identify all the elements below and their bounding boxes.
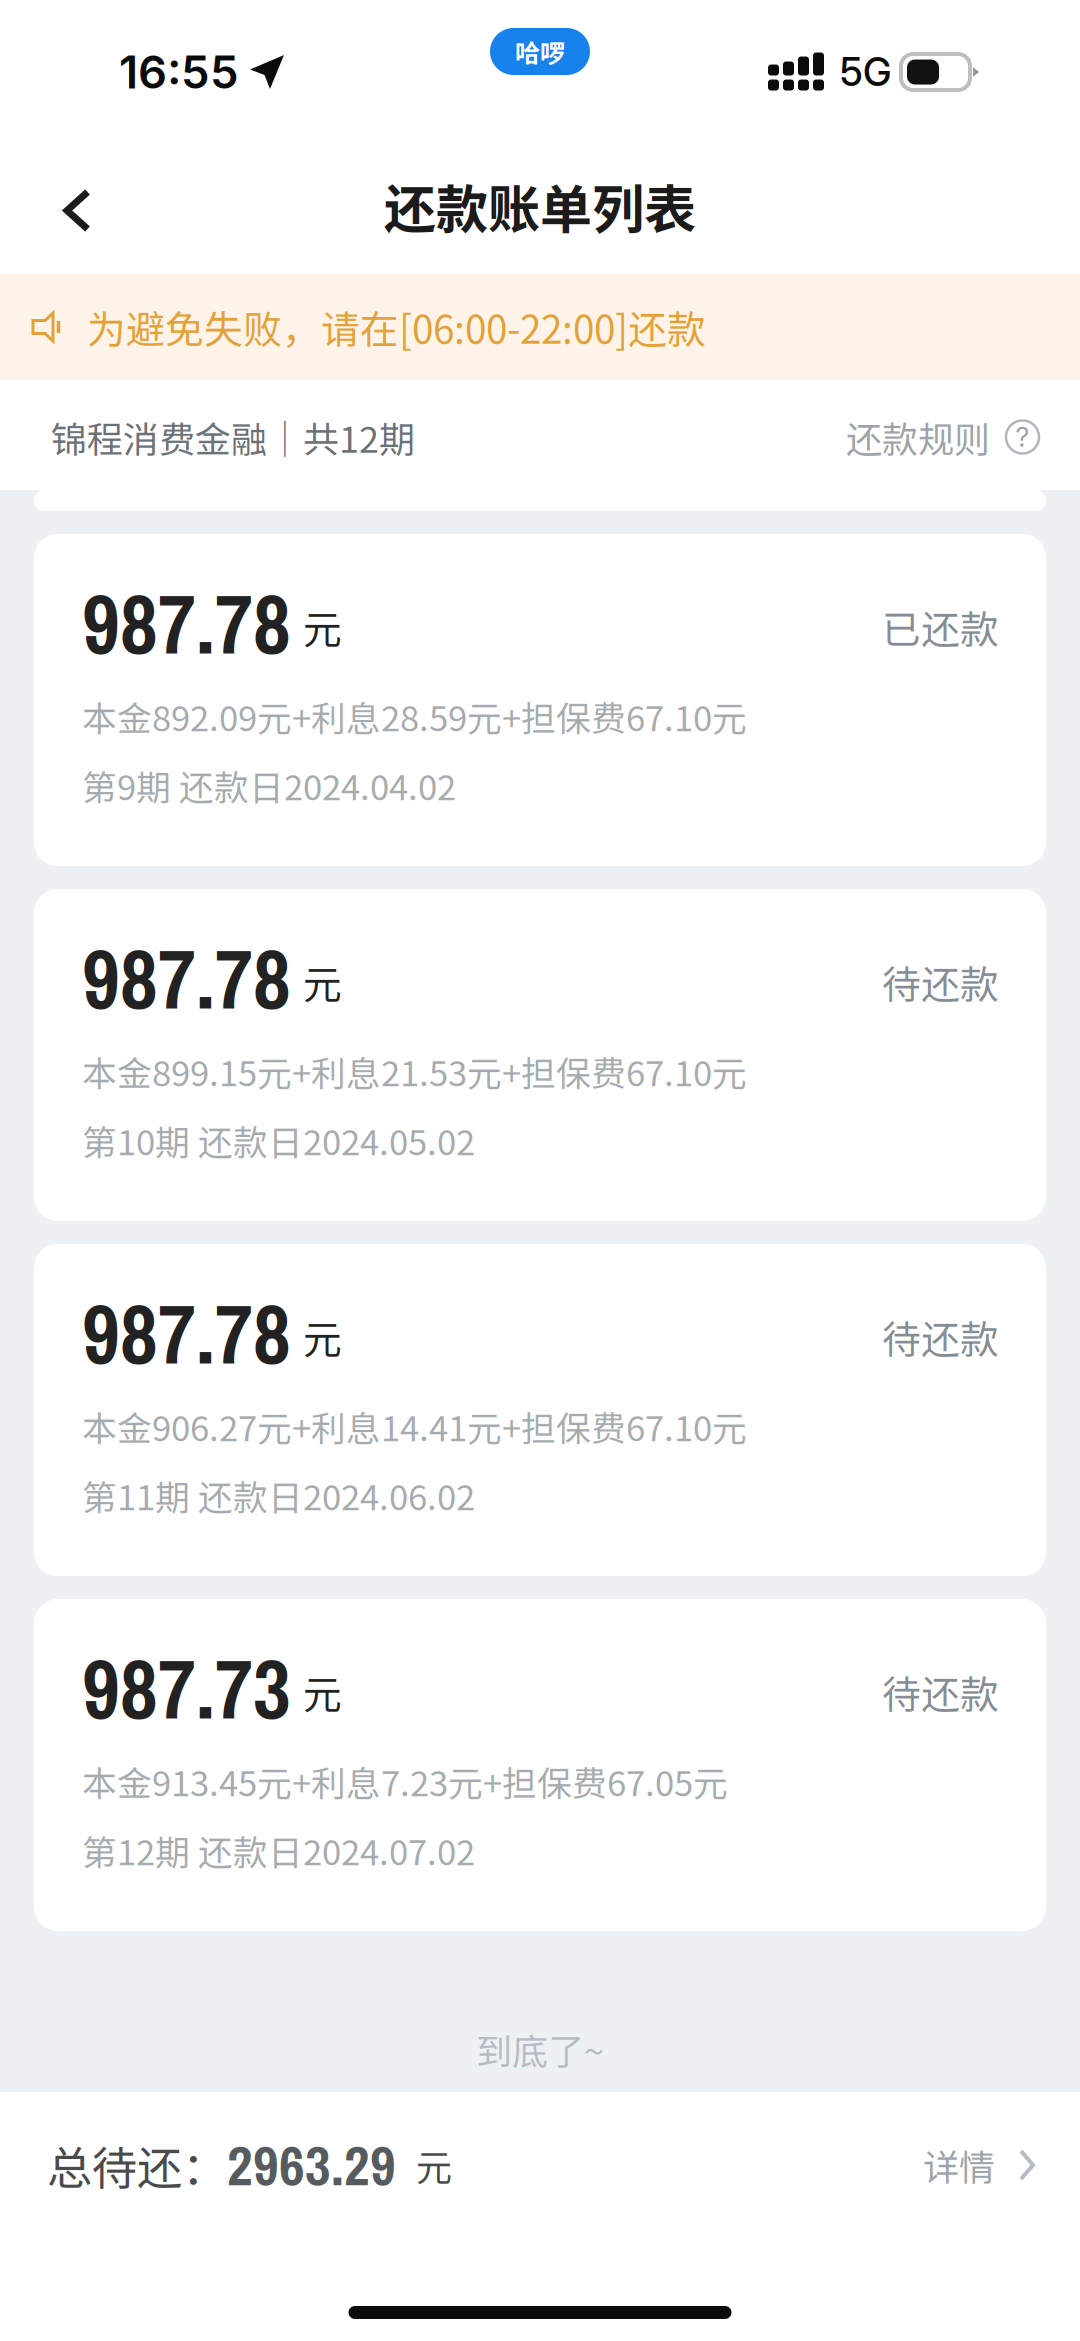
staticText: 锦程消费金融｜共12期 — [51, 411, 415, 463]
staticText: 本金906.27元+利息14.41元+担保费67.10元 — [82, 1401, 747, 1451]
staticText: ? — [1015, 421, 1029, 453]
staticText: 详情 — [923, 2139, 995, 2191]
staticText: 本金899.15元+利息21.53元+担保费67.10元 — [82, 1046, 747, 1096]
staticText: 第9期 还款日2024.04.02 — [82, 760, 456, 810]
staticText: 5G — [840, 49, 891, 95]
staticText: 待还款 — [882, 1309, 999, 1365]
staticText: 第10期 还款日2024.05.02 — [82, 1115, 475, 1165]
staticText: 16:55 — [119, 45, 239, 99]
button[interactable]: 987.78 — [34, 1244, 1046, 1576]
staticText: 元 — [303, 954, 342, 1010]
staticText: 还款账单列表 — [384, 168, 696, 243]
staticText: 本金892.09元+利息28.59元+担保费67.10元 — [82, 691, 747, 741]
staticText: 到底了~ — [476, 2023, 604, 2075]
staticText: 待还款 — [882, 1664, 999, 1720]
button[interactable]: 987.78 — [34, 534, 1046, 866]
staticText: 第11期 还款日2024.06.02 — [82, 1470, 475, 1520]
staticText: 元 — [303, 1664, 342, 1720]
button[interactable]: 987.73 — [34, 1599, 1046, 1931]
staticText: 元 — [303, 599, 342, 655]
staticText: 987.78 — [82, 568, 291, 679]
staticText: 元 — [303, 1309, 342, 1365]
staticText: 元 — [416, 2139, 452, 2191]
staticText: 哈啰 — [515, 33, 565, 70]
staticText: 待还款 — [882, 954, 999, 1010]
staticText: 987.78 — [82, 923, 291, 1034]
button[interactable]: 还款规则 — [846, 411, 1039, 463]
staticText: 2963.29 — [227, 2127, 396, 2203]
button[interactable]: Back — [22, 155, 132, 265]
staticText: 987.78 — [82, 1278, 291, 1389]
staticText: 已还款 — [882, 599, 999, 655]
button[interactable]: 987.78 — [34, 889, 1046, 1221]
staticText: 总待还： — [47, 2132, 227, 2198]
staticText: 第12期 还款日2024.07.02 — [82, 1825, 475, 1875]
staticText: 为避免失败，请在[06:00-22:00]还款 — [87, 299, 706, 355]
staticText: 987.73 — [82, 1633, 291, 1744]
staticText: 还款规则 — [846, 411, 990, 463]
button[interactable]: 总待还： — [0, 2092, 1080, 2254]
staticText: 本金913.45元+利息7.23元+担保费67.05元 — [82, 1756, 728, 1806]
